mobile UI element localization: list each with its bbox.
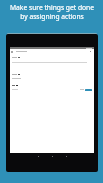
button[interactable]: Back: [10, 49, 94, 54]
staticText: Make sure things get done: [10, 3, 94, 12]
staticText: by assigning actions: [20, 12, 84, 21]
button[interactable]: Save: [85, 89, 92, 91]
